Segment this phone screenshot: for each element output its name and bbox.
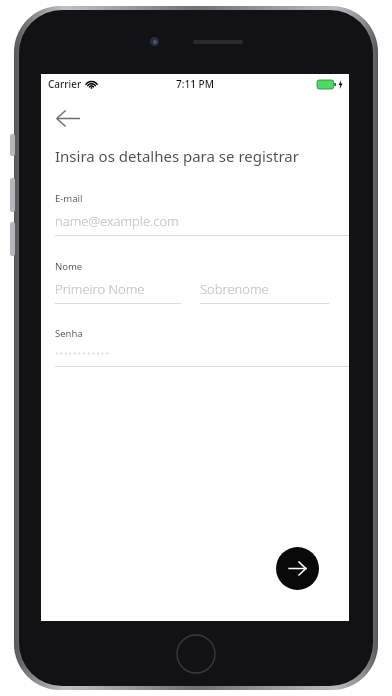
staticText: Sobrenome <box>200 280 269 298</box>
button[interactable]: Voltar <box>52 104 90 132</box>
staticText: name@example.com <box>55 212 179 230</box>
staticText: Primeiro Nome <box>55 280 145 298</box>
staticText: Nome <box>55 260 83 273</box>
button[interactable]: name@example.com <box>55 212 349 236</box>
button[interactable]: Sobrenome <box>200 280 329 304</box>
staticText: Carrier <box>48 77 82 91</box>
button[interactable] <box>55 346 349 367</box>
staticText: 7:11 PM <box>176 77 214 91</box>
staticText: Senha <box>55 327 83 340</box>
button[interactable]: Continuar <box>276 547 319 590</box>
staticText: E-mail <box>55 192 83 205</box>
button[interactable]: Primeiro Nome <box>55 280 181 304</box>
staticText: Insira os detalhes para se registrar <box>55 146 299 166</box>
